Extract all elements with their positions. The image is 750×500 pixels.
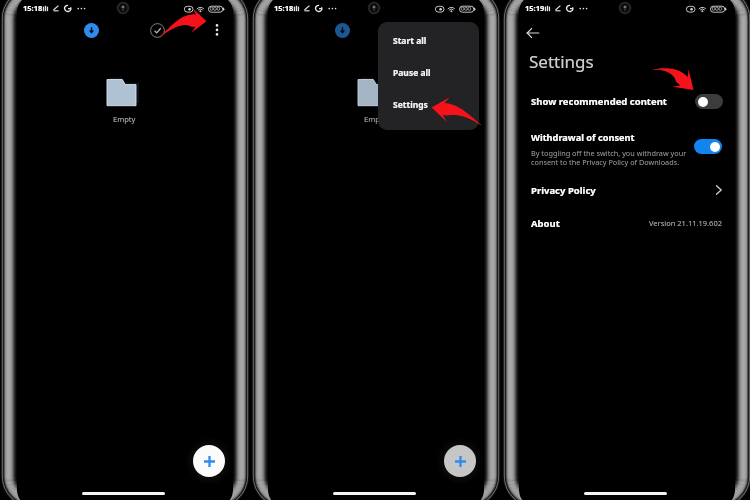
- button[interactable]: Add download: [193, 445, 225, 477]
- button[interactable]: Withdrawal of consent: [522, 128, 732, 166]
- staticText: By toggling off the switch, you withdraw…: [531, 148, 687, 167]
- staticText: Version 21.11.19.602: [649, 218, 722, 228]
- button[interactable]: Pause all: [378, 57, 479, 89]
- button[interactable]: Privacy Policy: [522, 178, 732, 202]
- staticText: Show recommended content: [531, 95, 667, 108]
- staticText: About: [531, 217, 560, 230]
- button[interactable]: Start all: [378, 25, 479, 57]
- staticText: Privacy Policy: [531, 184, 596, 197]
- staticText: 15:18: [23, 3, 43, 13]
- button[interactable]: Downloads: [84, 23, 99, 38]
- button[interactable]: Show recommended content: [522, 88, 732, 114]
- button[interactable]: Add download: [444, 445, 476, 477]
- staticText: 15:19: [525, 3, 545, 13]
- staticText: Settings: [393, 99, 428, 111]
- button[interactable]: Back: [520, 20, 546, 46]
- staticText: Start all: [393, 35, 427, 47]
- staticText: Withdrawal of consent: [531, 131, 635, 144]
- staticText: Empty: [113, 114, 136, 124]
- button[interactable]: About: [522, 212, 732, 234]
- staticText: 15:18: [274, 3, 294, 13]
- button[interactable]: Switch off: [695, 94, 723, 109]
- button[interactable]: Settings: [378, 89, 479, 121]
- button[interactable]: Switch on: [694, 139, 722, 154]
- button[interactable]: Downloads: [335, 23, 350, 38]
- button[interactable]: More options: [460, 22, 476, 38]
- staticText: Empty: [364, 114, 387, 124]
- staticText: Pause all: [393, 67, 431, 79]
- button[interactable]: More options: [209, 22, 225, 38]
- staticText: Settings: [529, 50, 594, 73]
- button[interactable]: Completed downloads: [150, 23, 165, 38]
